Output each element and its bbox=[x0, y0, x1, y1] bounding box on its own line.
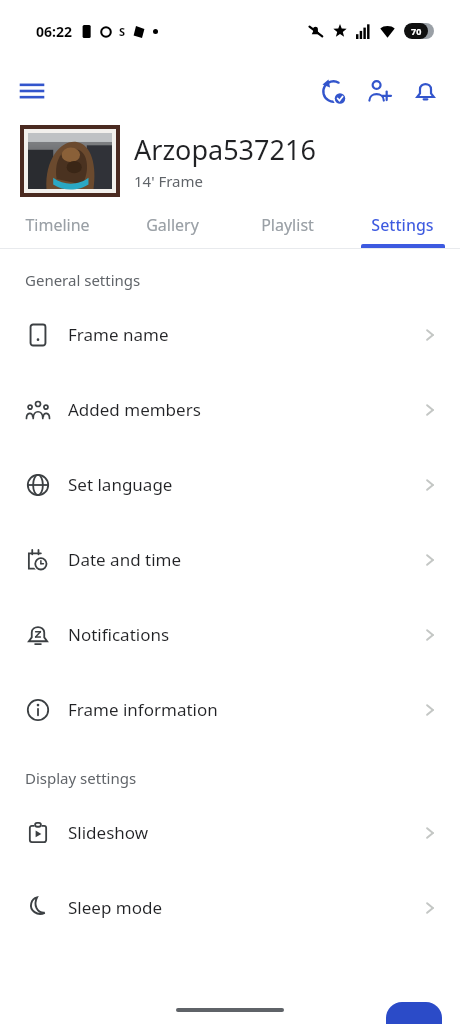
staticText: Gallery bbox=[146, 214, 199, 236]
staticText: Display settings bbox=[25, 768, 137, 788]
staticText: Arzopa537216 bbox=[134, 131, 316, 168]
button[interactable]: Sync bbox=[310, 68, 356, 114]
button[interactable]: Added members bbox=[0, 372, 460, 447]
staticText: Added members bbox=[68, 398, 201, 421]
staticText: Date and time bbox=[68, 548, 182, 571]
staticText: Settings bbox=[371, 214, 434, 236]
button[interactable]: Gallery bbox=[115, 202, 230, 248]
button[interactable]: Settings bbox=[345, 202, 460, 248]
staticText: 14' Frame bbox=[134, 171, 204, 191]
staticText: Notifications bbox=[68, 623, 170, 646]
staticText: Sleep mode bbox=[68, 896, 162, 919]
button[interactable]: Set language bbox=[0, 447, 460, 522]
staticText: Slideshow bbox=[68, 821, 149, 844]
button[interactable]: Sleep mode bbox=[0, 870, 460, 945]
staticText: Timeline bbox=[25, 214, 90, 236]
button[interactable]: Slideshow bbox=[0, 795, 460, 870]
button[interactable]: Frame name bbox=[0, 297, 460, 372]
button[interactable]: Menu bbox=[10, 69, 54, 113]
staticText: 06:22 bbox=[36, 22, 72, 41]
button[interactable]: Add member bbox=[356, 68, 402, 114]
button[interactable]: Timeline bbox=[0, 202, 115, 248]
staticText: S bbox=[119, 24, 126, 39]
button[interactable]: Add bbox=[386, 1002, 442, 1024]
button[interactable]: Playlist bbox=[230, 202, 345, 248]
staticText: 70 bbox=[411, 25, 422, 37]
staticText: Set language bbox=[68, 473, 173, 496]
button[interactable]: Date and time bbox=[0, 522, 460, 597]
button[interactable]: Notifications bbox=[0, 597, 460, 672]
button[interactable]: Notifications bbox=[402, 68, 448, 114]
staticText: Frame information bbox=[68, 698, 218, 721]
staticText: General settings bbox=[25, 270, 141, 290]
staticText: Playlist bbox=[261, 214, 314, 236]
button[interactable]: Frame information bbox=[0, 672, 460, 747]
staticText: Frame name bbox=[68, 323, 169, 346]
